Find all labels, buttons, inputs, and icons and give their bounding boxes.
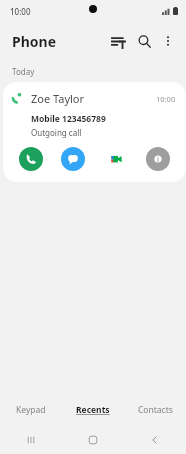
staticText: Today bbox=[12, 66, 35, 77]
button[interactable]: Keypad bbox=[0, 395, 62, 425]
staticText: Contacts bbox=[138, 404, 173, 416]
staticText: Keypad bbox=[16, 404, 46, 416]
staticText: 10:00 bbox=[156, 94, 176, 104]
button[interactable]: Recents bbox=[62, 395, 124, 425]
button[interactable]: Call details bbox=[146, 147, 170, 171]
button[interactable]: Message bbox=[61, 147, 85, 171]
button[interactable]: Back bbox=[124, 425, 186, 454]
button[interactable]: Sort bbox=[105, 28, 131, 54]
button[interactable]: Home bbox=[62, 425, 124, 454]
button[interactable]: More options bbox=[157, 30, 179, 52]
button[interactable]: Zoe Taylor bbox=[3, 82, 186, 182]
button[interactable]: Search bbox=[131, 28, 157, 54]
staticText: 10:00 bbox=[10, 6, 31, 17]
button[interactable]: Recent apps bbox=[0, 425, 62, 454]
button[interactable]: Call bbox=[19, 147, 43, 171]
staticText: Mobile 123456789 bbox=[31, 113, 106, 125]
staticText: Phone bbox=[12, 32, 57, 51]
button[interactable]: Contacts bbox=[124, 395, 186, 425]
staticText: Zoe Taylor bbox=[31, 91, 85, 106]
staticText: Recents bbox=[76, 404, 110, 416]
staticText: Outgoing call bbox=[31, 127, 82, 138]
button[interactable]: Video call bbox=[104, 147, 128, 171]
